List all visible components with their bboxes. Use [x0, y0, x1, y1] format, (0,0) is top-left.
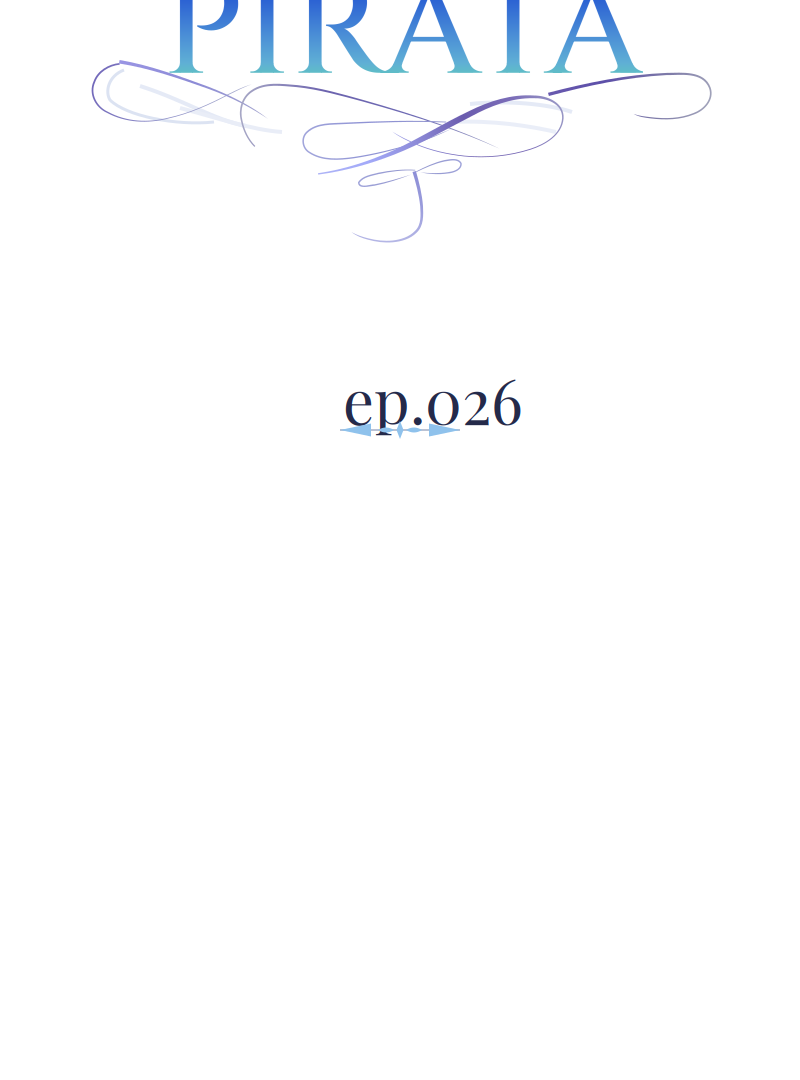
staticText: ep.026 [343, 358, 523, 440]
